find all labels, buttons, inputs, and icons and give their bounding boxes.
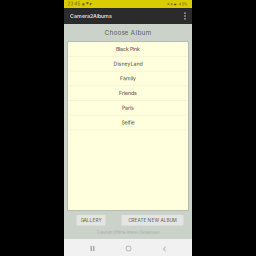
button[interactable]: Family — [68, 71, 188, 86]
button[interactable]: Back — [146, 240, 182, 256]
button[interactable]: CREATE NEW ALBUM — [121, 215, 183, 225]
button[interactable]: GALLERY — [76, 215, 105, 225]
staticText: Choose Album — [104, 28, 151, 36]
button[interactable]: Selfie — [68, 115, 188, 130]
button[interactable]: Friends — [68, 86, 188, 101]
button[interactable]: Paris — [68, 101, 188, 115]
staticText: Paris — [122, 105, 134, 111]
staticText: Camera2Albums — [70, 13, 112, 19]
staticText: 23:45 — [68, 1, 81, 7]
button[interactable]: DisneyLand — [68, 57, 188, 71]
staticText: GALLERY — [80, 217, 101, 223]
staticText: CREATE NEW ALBUM — [128, 217, 176, 223]
staticText: ‹ — [162, 242, 166, 255]
button[interactable]: Black Pink — [68, 42, 188, 57]
staticText: Black Pink — [116, 46, 140, 52]
staticText: Selfie — [121, 119, 134, 126]
staticText: ▣ ▼ ◤ — [82, 2, 92, 6]
button[interactable]: Home — [110, 240, 146, 256]
staticText: Copyright 2019 by Antonio Tengelmann — [96, 230, 159, 234]
staticText: ✦ ▾ ▰ 43% — [166, 2, 187, 6]
button[interactable]: More options — [179, 8, 191, 24]
button[interactable]: Recent apps — [74, 240, 110, 256]
staticText: DisneyLand — [113, 61, 142, 67]
staticText: Family — [120, 75, 136, 82]
staticText: Friends — [119, 90, 137, 96]
